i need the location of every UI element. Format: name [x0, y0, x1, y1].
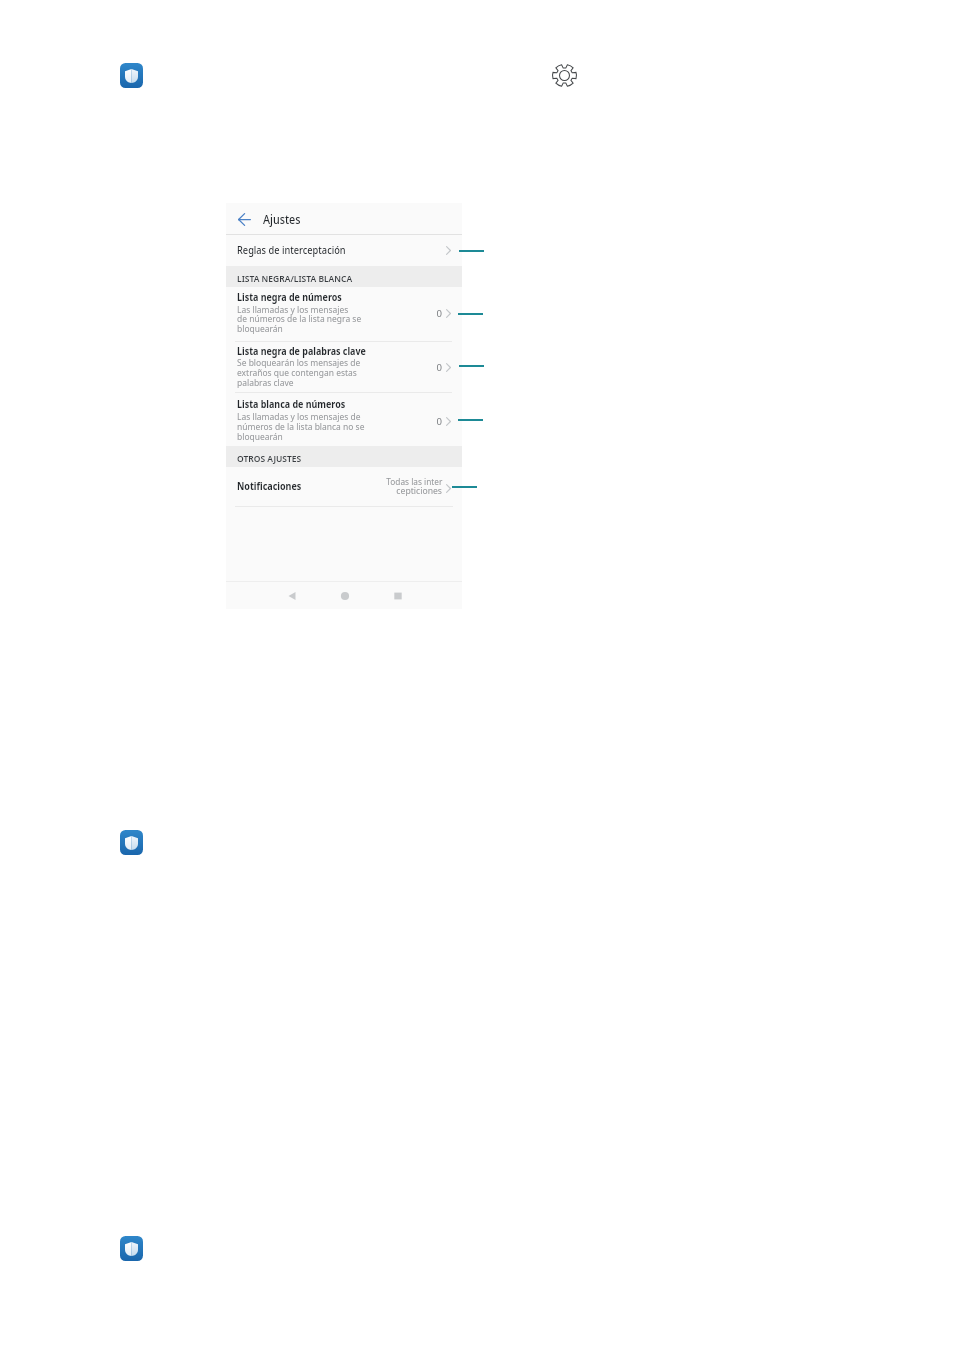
- staticText: bloquearán: [237, 431, 283, 443]
- staticText: Lista blanca de números: [237, 396, 345, 411]
- staticText: 0: [436, 307, 442, 320]
- staticText: de números de la lista negra se: [237, 313, 362, 325]
- button[interactable]: Recents: [392, 590, 404, 602]
- staticText: LISTA NEGRA/LISTA BLANCA: [237, 272, 353, 285]
- staticText: Notificaciones: [237, 478, 302, 493]
- staticText: Se bloquearán los mensajes de: [237, 357, 361, 369]
- button[interactable]: Home: [339, 590, 351, 602]
- button[interactable]: Security app icon: [120, 830, 143, 855]
- staticText: Las llamadas y los mensajes de: [237, 411, 361, 423]
- staticText: bloquearán: [237, 323, 283, 335]
- staticText: cepticiones: [396, 484, 442, 497]
- staticText: OTROS AJUSTES: [237, 452, 302, 465]
- staticText: 0: [436, 361, 442, 374]
- button[interactable]: [226, 286, 462, 342]
- button[interactable]: [226, 235, 462, 266]
- staticText: Todas las inter: [386, 475, 442, 488]
- staticText: Reglas de interceptación: [237, 242, 346, 257]
- button[interactable]: Security app icon: [120, 63, 143, 88]
- button[interactable]: Back: [232, 207, 257, 232]
- button[interactable]: [226, 342, 462, 393]
- staticText: extraños que contengan estas: [237, 367, 357, 379]
- staticText: palabras clave: [237, 377, 293, 389]
- staticText: números de la lista blanca no se: [237, 421, 365, 433]
- staticText: Ajustes: [263, 211, 301, 228]
- staticText: Lista negra de palabras clave: [237, 343, 366, 358]
- button[interactable]: Back: [286, 590, 298, 602]
- button[interactable]: Settings: [552, 64, 577, 87]
- button[interactable]: [226, 392, 462, 446]
- button[interactable]: Security app icon: [120, 1236, 143, 1261]
- staticText: Las llamadas y los mensajes: [237, 304, 349, 316]
- staticText: Lista negra de números: [237, 289, 342, 304]
- button[interactable]: [226, 467, 462, 506]
- staticText: 0: [436, 415, 442, 428]
